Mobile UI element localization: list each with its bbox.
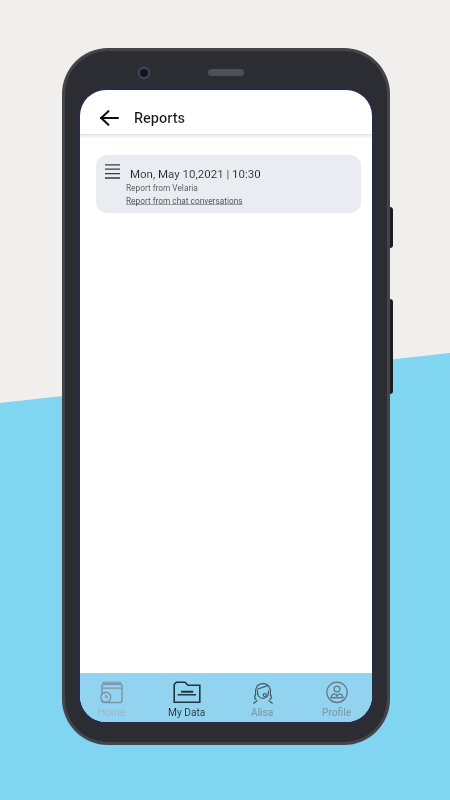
button[interactable]: Alisa	[226, 673, 299, 722]
staticText: Home	[98, 707, 126, 719]
button[interactable]: Home	[80, 673, 148, 722]
staticText: Report from Velaria	[126, 183, 198, 193]
button[interactable]: Report from chat conversations	[126, 196, 243, 206]
staticText: Alisa	[251, 707, 274, 719]
staticText: Mon, May 10,2021 | 10:30	[130, 167, 261, 180]
staticText: Reports	[134, 110, 186, 127]
button[interactable]	[80, 102, 119, 134]
staticText: My Data	[168, 707, 206, 719]
button[interactable]: My Data	[150, 673, 223, 722]
button[interactable]: Profile	[300, 673, 372, 722]
staticText: Profile	[322, 707, 352, 719]
button[interactable]: Mon, May 10,2021 | 10:30	[96, 155, 361, 213]
